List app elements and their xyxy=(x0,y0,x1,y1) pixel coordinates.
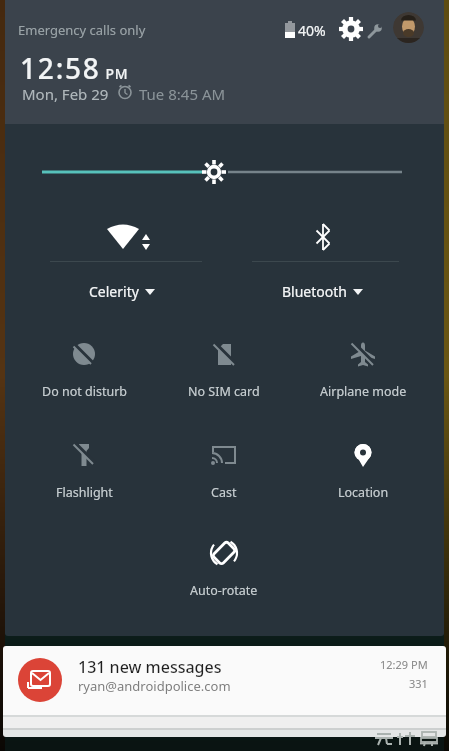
button[interactable]: Location xyxy=(293,429,433,503)
staticText: Cast xyxy=(211,484,237,501)
staticText: PM xyxy=(101,64,129,83)
staticText: Airplane mode xyxy=(320,383,407,400)
staticText: 12:58 xyxy=(20,49,101,87)
button[interactable]: No SIM card xyxy=(154,328,294,402)
staticText: Auto-rotate xyxy=(190,582,258,599)
staticText: Bluetooth xyxy=(282,282,347,301)
staticText: Do not disturb xyxy=(42,383,127,400)
staticText: 131 new messages xyxy=(78,656,222,678)
button[interactable]: Auto-rotate xyxy=(154,527,294,601)
staticText: ryan@androidpolice.com xyxy=(78,677,231,695)
button[interactable] xyxy=(42,158,407,186)
button[interactable] xyxy=(393,12,424,43)
staticText: 12:29 PM xyxy=(380,657,428,672)
button[interactable] xyxy=(3,646,446,715)
button[interactable]: Airplane mode xyxy=(293,328,433,402)
staticText: Location xyxy=(338,484,389,501)
button[interactable] xyxy=(45,210,210,305)
staticText: Emergency calls only xyxy=(18,21,146,39)
staticText: Flashlight xyxy=(56,484,113,501)
button[interactable]: Flashlight xyxy=(14,429,154,503)
staticText: No SIM card xyxy=(188,383,260,400)
button[interactable]: Do not disturb xyxy=(14,328,154,402)
staticText: Mon, Feb 29 xyxy=(22,84,109,104)
staticText: 40% xyxy=(298,21,326,40)
button[interactable] xyxy=(245,210,410,305)
staticText: Tue 8:45 AM xyxy=(139,84,226,104)
staticText: Celerity xyxy=(89,282,139,301)
button[interactable]: Cast xyxy=(154,429,294,503)
staticText: 331 xyxy=(409,676,428,691)
button[interactable] xyxy=(337,15,365,43)
